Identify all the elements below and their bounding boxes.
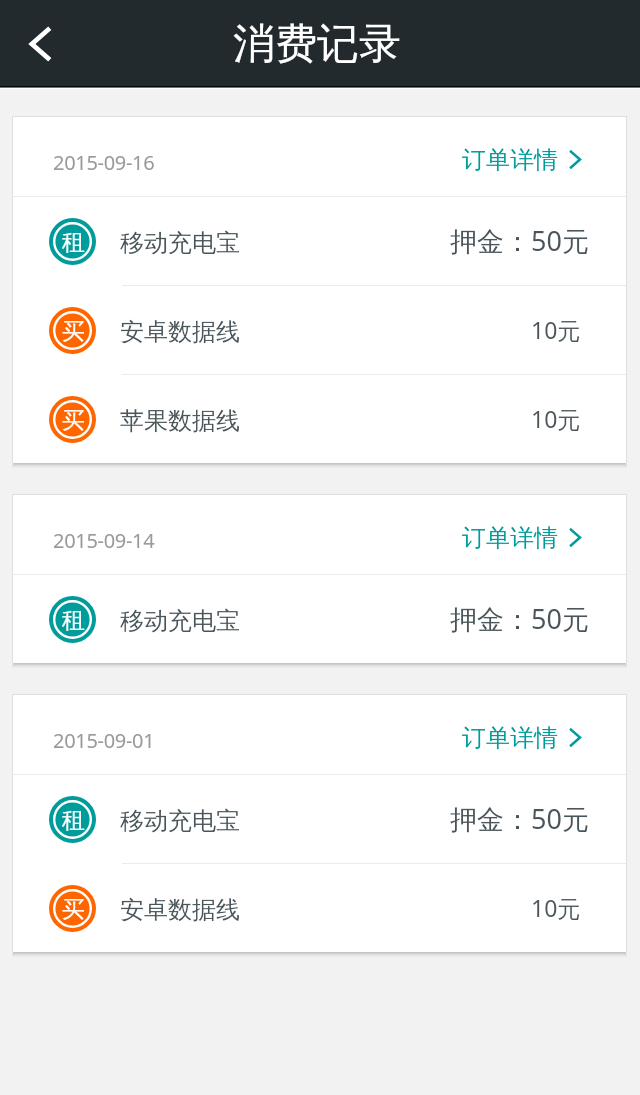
staticText: 2015-09-16 (53, 149, 155, 176)
button[interactable]: 租 (13, 197, 626, 285)
staticText: 安卓数据线 (120, 317, 240, 347)
staticText: 2015-09-14 (53, 527, 155, 554)
staticText: 订单详情 (462, 523, 558, 553)
button[interactable]: 2015-09-16 (13, 117, 626, 196)
staticText: 10元 (531, 892, 581, 923)
staticText: 买 (62, 895, 85, 924)
staticText: 订单详情 (462, 145, 558, 175)
staticText: 移动充电宝 (120, 228, 240, 258)
staticText: 订单详情 (462, 723, 558, 753)
staticText: 买 (62, 317, 85, 346)
button[interactable]: 2015-09-14 (13, 495, 626, 574)
staticText: 消费记录 (233, 18, 401, 71)
staticText: 买 (62, 406, 85, 435)
button[interactable]: 买 (13, 375, 626, 463)
staticText: 押金：50元 (450, 800, 589, 837)
staticText: 移动充电宝 (120, 606, 240, 636)
staticText: 2015-09-01 (53, 727, 155, 754)
staticText: 租 (62, 228, 85, 257)
button[interactable]: Back (0, 1, 80, 89)
staticText: 安卓数据线 (120, 895, 240, 925)
staticText: 10元 (531, 403, 581, 434)
staticText: 押金：50元 (450, 222, 589, 259)
staticText: 10元 (531, 314, 581, 345)
button[interactable]: 买 (13, 864, 626, 952)
staticText: 租 (62, 806, 85, 835)
staticText: 租 (62, 606, 85, 635)
staticText: 苹果数据线 (120, 406, 240, 436)
button[interactable]: 租 (13, 775, 626, 863)
button[interactable]: 租 (13, 575, 626, 663)
button[interactable]: 2015-09-01 (13, 695, 626, 774)
staticText: 移动充电宝 (120, 806, 240, 836)
staticText: 押金：50元 (450, 600, 589, 637)
button[interactable]: 买 (13, 286, 626, 374)
